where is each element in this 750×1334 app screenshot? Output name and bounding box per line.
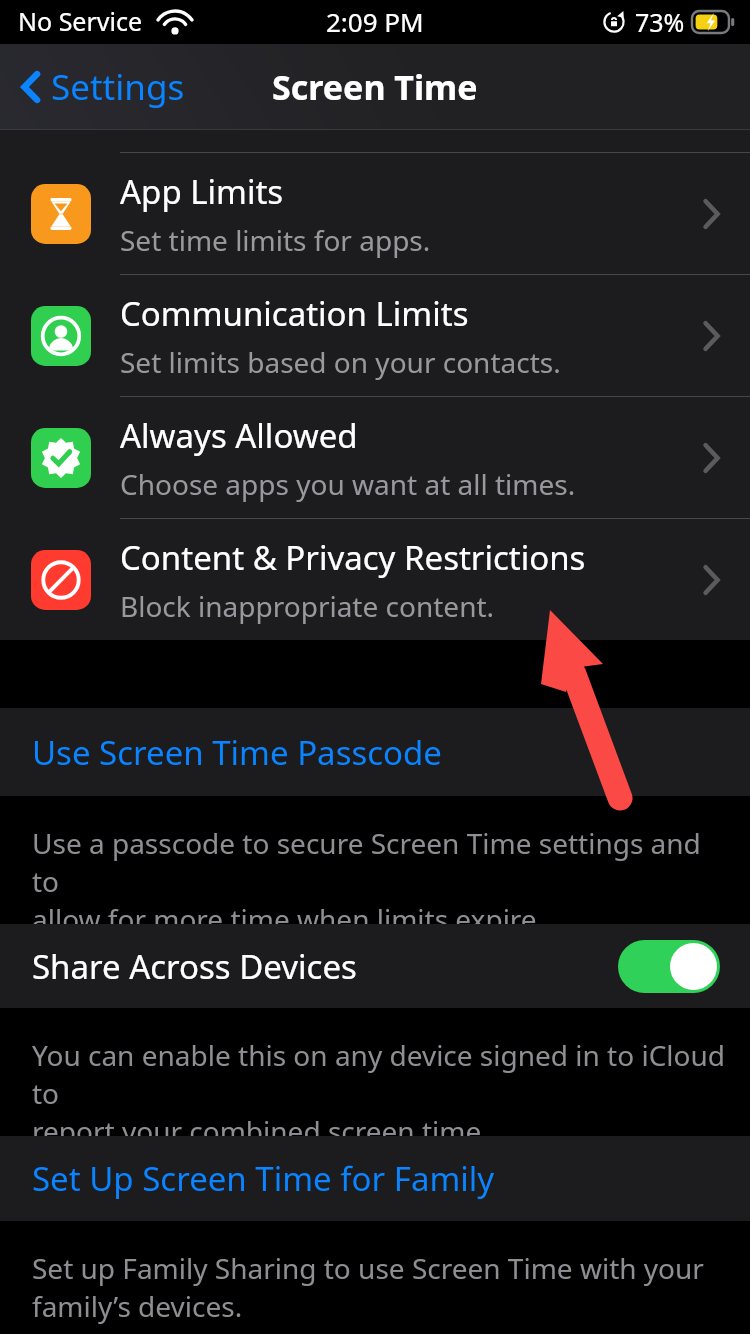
staticText: Screen Time: [272, 64, 478, 110]
staticText: Choose apps you want at all times.: [120, 465, 576, 503]
staticText: No Service: [18, 4, 143, 38]
staticText: 73%: [635, 5, 685, 39]
button[interactable]: Settings: [14, 55, 191, 119]
staticText: Set Up Screen Time for Family: [32, 1156, 495, 1201]
staticText: Content & Privacy Restrictions: [120, 535, 586, 580]
staticText: Set up Family Sharing to use Screen Time…: [32, 1249, 704, 1325]
staticText: Always Allowed: [120, 413, 358, 458]
staticText: 2:09 PM: [326, 4, 424, 39]
button[interactable]: Content & Privacy Restrictions: [0, 519, 750, 640]
button[interactable]: Use Screen Time Passcode: [0, 708, 750, 796]
button[interactable]: Set Up Screen Time for Family: [0, 1136, 750, 1221]
staticText: Set limits based on your contacts.: [120, 343, 561, 381]
staticText: Use Screen Time Passcode: [32, 730, 442, 775]
button[interactable]: Share Across Devices toggle, on: [618, 940, 720, 993]
staticText: Use a passcode to secure Screen Time set…: [32, 824, 726, 924]
button[interactable]: Share Across Devices: [0, 924, 750, 1008]
button[interactable]: App Limits: [0, 153, 750, 274]
button[interactable]: Communication Limits: [0, 275, 750, 396]
staticText: Set time limits for apps.: [120, 221, 431, 259]
staticText: App Limits: [120, 169, 284, 214]
staticText: Settings: [51, 63, 185, 111]
staticText: You can enable this on any device signed…: [32, 1036, 726, 1136]
staticText: Communication Limits: [120, 291, 469, 336]
button[interactable]: Always Allowed: [0, 397, 750, 518]
staticText: Share Across Devices: [32, 944, 357, 989]
staticText: Block inappropriate content.: [120, 587, 495, 625]
